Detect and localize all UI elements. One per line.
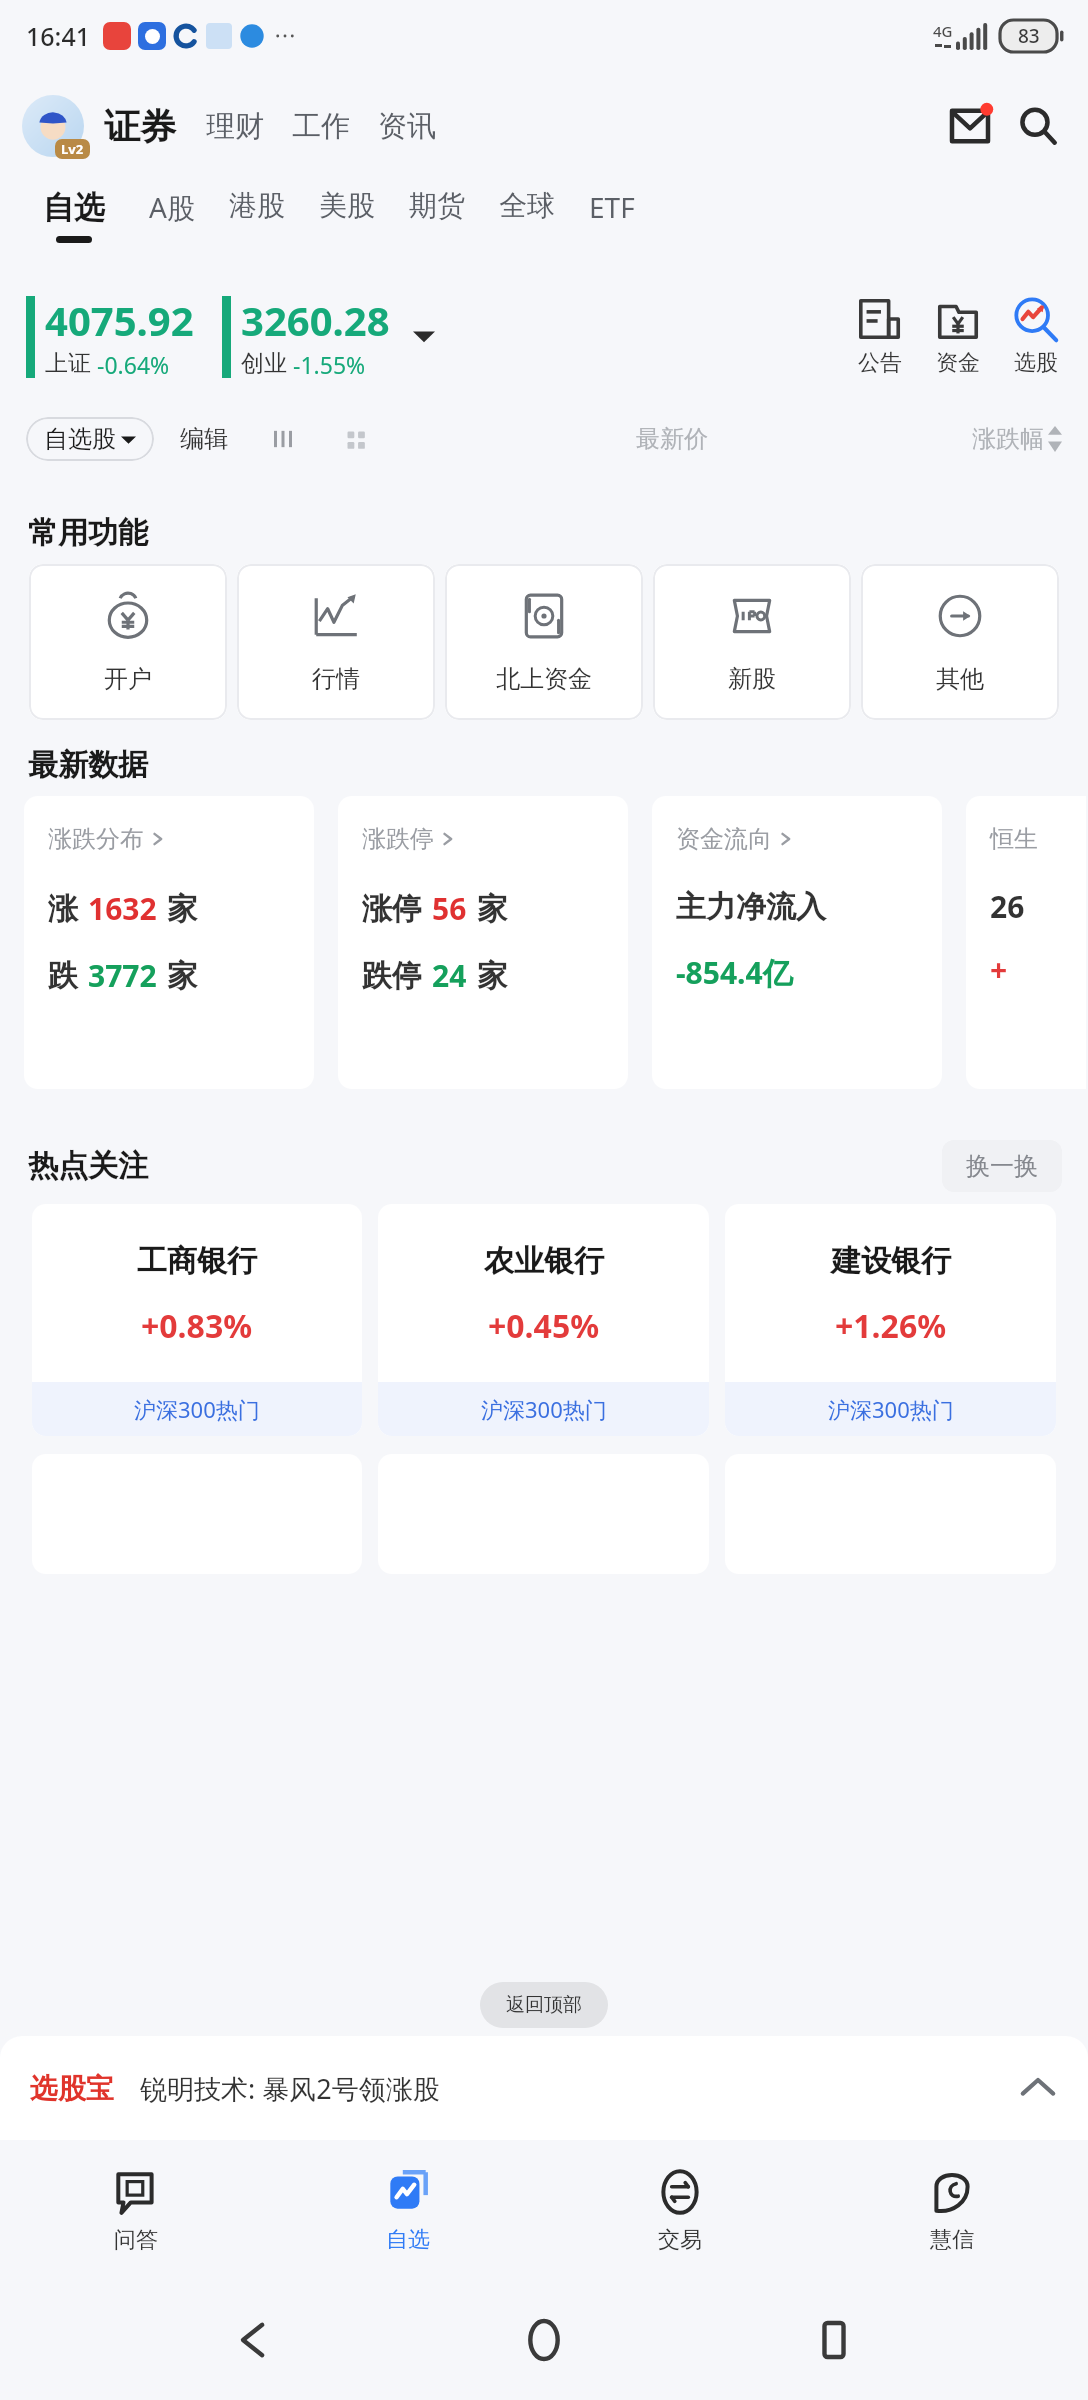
staticText: 期货: [409, 188, 465, 223]
staticText: 3260.28: [241, 293, 390, 347]
button[interactable]: 3260.28: [222, 293, 390, 380]
button[interactable]: 证券: [104, 104, 176, 149]
staticText: 资金流向: [676, 824, 772, 854]
staticText: 最新数据: [28, 746, 148, 784]
staticText: 恒生: [990, 824, 1038, 854]
staticText: 港股: [229, 188, 285, 223]
button[interactable]: 工作: [292, 108, 350, 145]
button[interactable]: Profile: [22, 95, 84, 157]
button[interactable]: 最新价: [636, 424, 708, 454]
staticText: 26: [990, 886, 1025, 927]
staticText: 新股: [728, 664, 776, 694]
button[interactable]: 涨跌幅: [972, 424, 1062, 454]
button[interactable]: 选股宝: [0, 2036, 1088, 2140]
button[interactable]: 问答: [0, 2140, 272, 2280]
button[interactable]: 资讯: [378, 108, 436, 145]
staticText: 跌停: [362, 957, 422, 995]
button[interactable]: 4075.92: [26, 293, 194, 380]
button[interactable]: Home: [509, 2305, 579, 2375]
staticText: 4G: [933, 21, 953, 41]
staticText: 4075.92: [45, 293, 194, 347]
button[interactable]: 资金流向: [652, 796, 942, 1089]
staticText: 家: [477, 890, 507, 928]
button[interactable]: 慧信: [816, 2140, 1088, 2280]
button[interactable]: 选股: [1010, 296, 1062, 377]
button[interactable]: 换一换: [942, 1140, 1062, 1192]
staticText: 选股: [1014, 349, 1058, 377]
staticText: 锐明技术: 暴风2号领涨股: [140, 2070, 440, 2107]
button[interactable]: Recents: [799, 2305, 869, 2375]
staticText: 主力净流入: [676, 888, 826, 926]
button[interactable]: 编辑: [180, 424, 228, 454]
button[interactable]: A股: [132, 180, 212, 243]
button[interactable]: 其他: [861, 564, 1059, 720]
button[interactable]: Grid view: [338, 422, 372, 456]
staticText: 选股宝: [30, 2071, 114, 2106]
button[interactable]: 新股: [653, 564, 851, 720]
button[interactable]: 理财: [206, 108, 264, 145]
staticText: +0.83%: [141, 1304, 253, 1348]
button[interactable]: 北上资金: [445, 564, 643, 720]
button[interactable]: 港股: [212, 180, 302, 240]
staticText: 创业: [241, 349, 287, 378]
staticText: 全球: [499, 188, 555, 223]
button[interactable]: Messages: [942, 98, 998, 154]
button[interactable]: 自选: [26, 180, 122, 251]
staticText: 24: [432, 955, 467, 996]
button[interactable]: Back: [220, 2305, 290, 2375]
button[interactable]: 全球: [482, 180, 572, 240]
button[interactable]: 涨跌停: [338, 796, 628, 1089]
staticText: 家: [477, 957, 507, 995]
staticText: 16:41: [26, 19, 91, 53]
staticText: 涨: [48, 890, 78, 928]
button[interactable]: 开户: [29, 564, 227, 720]
staticText: 涨跌分布: [48, 824, 144, 854]
staticText: 3772: [88, 955, 157, 996]
button[interactable]: ETF: [572, 180, 652, 243]
button[interactable]: 恒生: [966, 796, 1086, 1089]
staticText: -0.64%: [97, 349, 170, 380]
button[interactable]: List view: [266, 422, 300, 456]
staticText: 跌: [48, 957, 78, 995]
button[interactable]: 自选: [272, 2140, 544, 2280]
button[interactable]: 建设银行: [725, 1204, 1056, 1436]
button[interactable]: 自选股: [26, 417, 154, 461]
staticText: 沪深300热门: [828, 1394, 954, 1424]
staticText: 自选股: [44, 424, 116, 454]
staticText: 交易: [658, 2226, 702, 2254]
button[interactable]: 资金: [932, 296, 984, 377]
button[interactable]: 美股: [302, 180, 392, 240]
button[interactable]: Search: [1010, 98, 1066, 154]
button[interactable]: 公告: [854, 296, 906, 377]
staticText: -854.4亿: [676, 952, 793, 993]
staticText: ETF: [589, 188, 635, 226]
staticText: 公告: [858, 349, 902, 377]
staticText: 建设银行: [831, 1242, 951, 1280]
staticText: 行情: [312, 664, 360, 694]
staticText: 美股: [319, 188, 375, 223]
staticText: 涨跌幅: [972, 424, 1044, 454]
staticText: 自选: [386, 2226, 430, 2254]
button[interactable]: 行情: [237, 564, 435, 720]
staticText: 沪深300热门: [481, 1394, 607, 1424]
staticText: Lv2: [61, 140, 84, 158]
button[interactable]: Expand indices: [404, 316, 444, 356]
staticText: 涨跌停: [362, 824, 434, 854]
button[interactable]: 工商银行: [32, 1204, 362, 1436]
button[interactable]: 返回顶部: [480, 1982, 608, 2028]
staticText: 家: [167, 890, 197, 928]
staticText: 1632: [88, 888, 157, 929]
staticText: -1.55%: [293, 349, 366, 380]
button[interactable]: 涨跌分布: [24, 796, 314, 1089]
staticText: +1.26%: [835, 1304, 947, 1348]
button[interactable]: 交易: [544, 2140, 816, 2280]
staticText: 常用功能: [28, 514, 148, 552]
staticText: 上证: [45, 349, 91, 378]
staticText: 涨停: [362, 890, 422, 928]
button[interactable]: 期货: [392, 180, 482, 240]
button[interactable]: 农业银行: [378, 1204, 709, 1436]
staticText: 沪深300热门: [134, 1394, 260, 1424]
